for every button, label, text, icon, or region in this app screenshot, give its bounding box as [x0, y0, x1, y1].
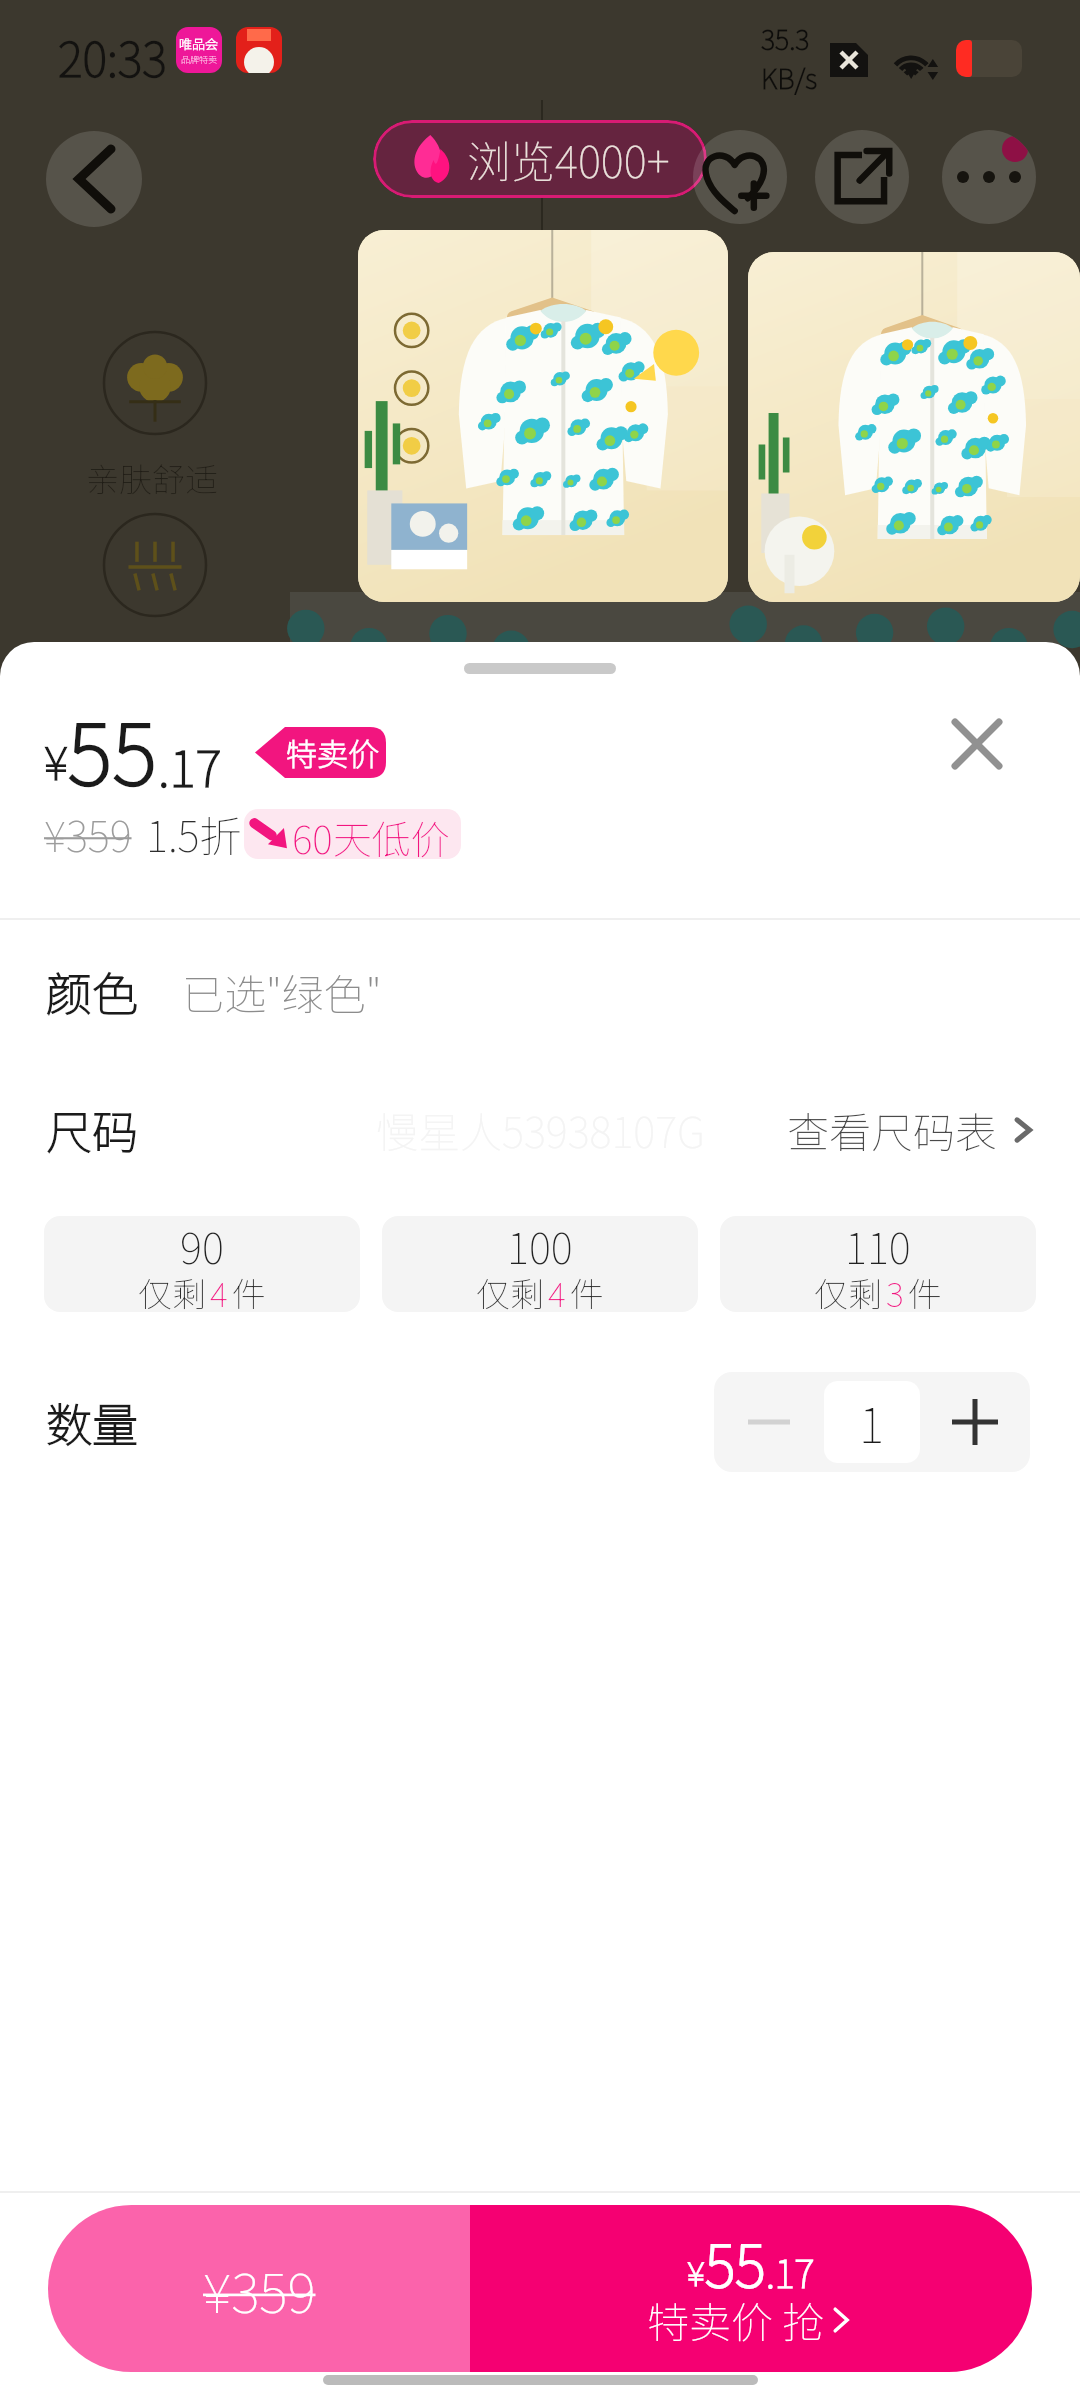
- button[interactable]: ¥359: [48, 2205, 470, 2372]
- staticText: 唯品会: [179, 34, 219, 53]
- button[interactable]: 110: [720, 1216, 1036, 1312]
- button[interactable]: Close: [927, 694, 1027, 794]
- staticText: .17: [158, 729, 222, 801]
- staticText: 查看尺码表: [787, 1099, 998, 1160]
- button[interactable]: Share: [815, 130, 909, 224]
- staticText: 20:33: [58, 22, 167, 90]
- button[interactable]: 浏览4000+: [373, 120, 707, 198]
- staticText: ¥: [44, 727, 68, 794]
- staticText: 特卖价: [286, 730, 379, 775]
- staticText: 110: [845, 1216, 911, 1276]
- staticText: 1.5折: [146, 803, 242, 864]
- staticText: 耐磨透气: [86, 633, 218, 681]
- staticText: 浏览4000+: [467, 127, 670, 191]
- staticText: 4: [548, 1268, 566, 1312]
- button[interactable]: 查看尺码表: [787, 1099, 1038, 1160]
- staticText: 仅剩: [476, 1268, 544, 1312]
- staticText: 1: [859, 1387, 885, 1457]
- staticText: 55: [705, 2220, 766, 2304]
- button[interactable]: Increase quantity: [920, 1372, 1030, 1472]
- staticText: 尺码: [46, 1096, 138, 1163]
- staticText: .17: [766, 2244, 815, 2299]
- staticText: KB/s: [761, 58, 818, 97]
- staticText: 3: [886, 1268, 904, 1312]
- staticText: 件: [570, 1268, 604, 1312]
- button[interactable]: ¥: [470, 2205, 1032, 2372]
- staticText: 已选"绿色": [182, 961, 382, 1022]
- staticText: 数量: [46, 1389, 138, 1456]
- staticText: 35.3: [761, 19, 810, 58]
- staticText: 件: [908, 1268, 942, 1312]
- staticText: 60天低价: [292, 809, 450, 859]
- staticText: ¥359: [203, 2250, 316, 2328]
- staticText: 55: [68, 688, 158, 810]
- staticText: ¥: [687, 2247, 705, 2296]
- staticText: ¥359: [44, 803, 132, 864]
- button[interactable]: 90: [44, 1216, 360, 1312]
- button[interactable]: Back: [46, 131, 142, 227]
- staticText: 仅剩: [814, 1268, 882, 1312]
- staticText: 品牌特卖: [181, 53, 218, 66]
- staticText: 100: [507, 1216, 573, 1276]
- staticText: 颜色: [46, 958, 138, 1025]
- staticText: 亲肤舒适: [86, 454, 218, 502]
- button[interactable]: 100: [382, 1216, 698, 1312]
- staticText: 特卖价 抢: [647, 2289, 825, 2350]
- staticText: 4: [210, 1268, 228, 1312]
- button[interactable]: Add to favorites: [693, 130, 787, 224]
- staticText: 仅剩: [138, 1268, 206, 1312]
- button[interactable]: More options: [942, 130, 1036, 224]
- button[interactable]: Decrease quantity: [714, 1372, 824, 1472]
- staticText: 慢星人53938107G: [376, 1099, 705, 1160]
- staticText: 90: [180, 1216, 224, 1276]
- staticText: 件: [232, 1268, 266, 1312]
